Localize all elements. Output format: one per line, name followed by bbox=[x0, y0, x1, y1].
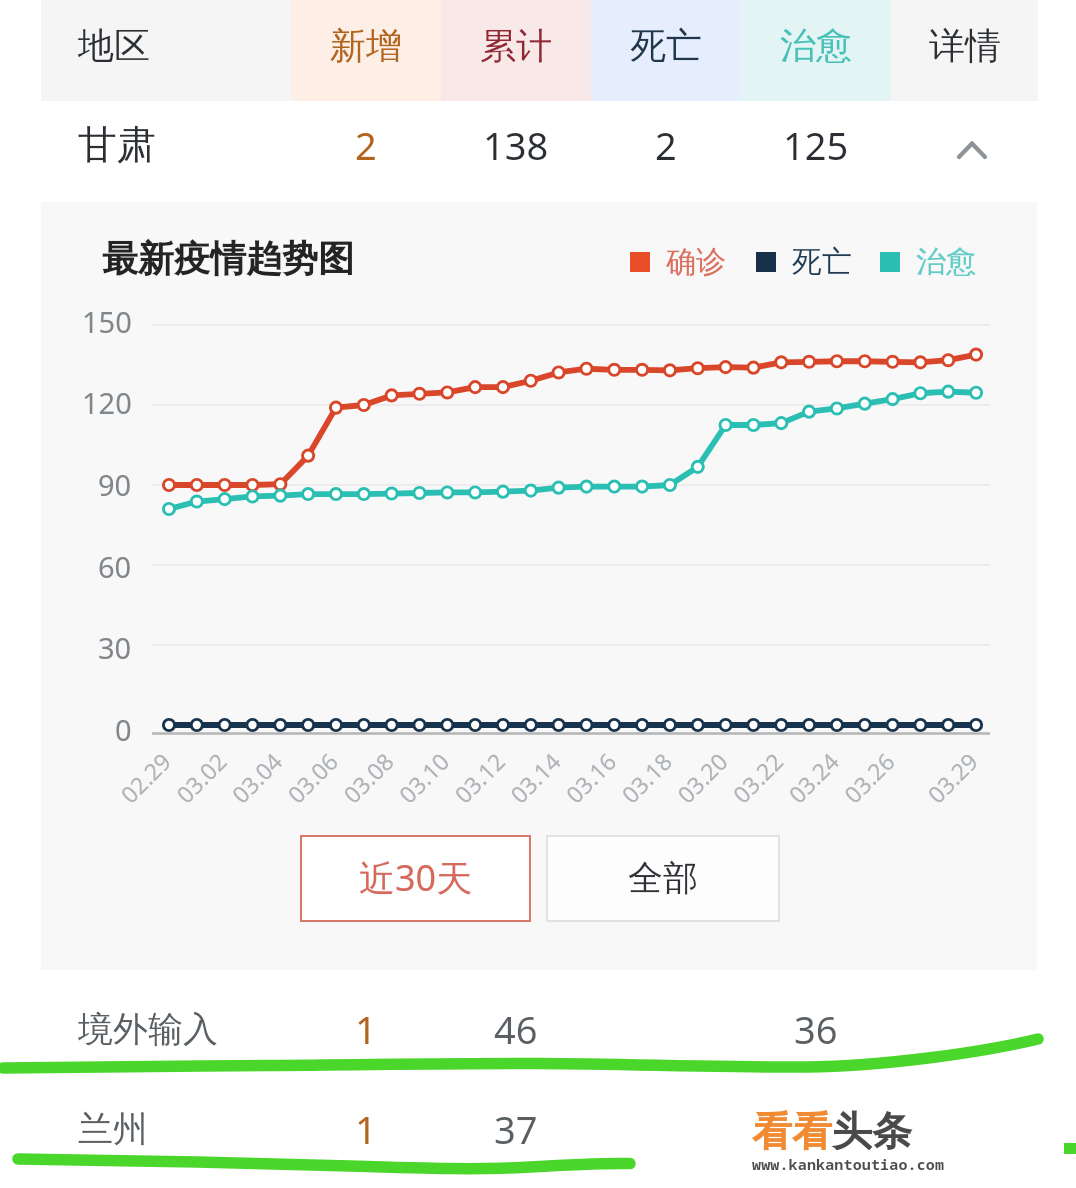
staticText: 治愈 bbox=[780, 23, 852, 68]
staticText: 46 bbox=[494, 1003, 538, 1055]
button[interactable]: 兰州 bbox=[0, 1089, 1076, 1169]
staticText: 1 bbox=[355, 1003, 377, 1055]
staticText: 头条 bbox=[832, 1106, 912, 1156]
staticText: 138 bbox=[483, 119, 549, 171]
button[interactable]: 死亡 bbox=[591, 0, 741, 101]
button[interactable]: 甘肃 bbox=[0, 101, 1076, 202]
staticText: 详情 bbox=[929, 23, 1001, 68]
staticText: 甘肃 bbox=[78, 120, 156, 169]
staticText: 2 bbox=[355, 119, 377, 171]
staticText: 125 bbox=[783, 119, 849, 171]
staticText: 2 bbox=[655, 119, 677, 171]
button[interactable]: 新增 bbox=[291, 0, 441, 101]
button[interactable]: 近30天 bbox=[300, 835, 531, 922]
button[interactable]: 境外输入 bbox=[0, 989, 1076, 1069]
button[interactable]: 治愈 bbox=[741, 0, 891, 101]
button[interactable]: 累计 bbox=[441, 0, 591, 101]
staticText: 1 bbox=[355, 1103, 377, 1155]
staticText: 死亡 bbox=[792, 243, 852, 281]
button[interactable]: 详情 bbox=[891, 0, 1038, 101]
staticText: 看看 bbox=[752, 1106, 832, 1156]
staticText: 全部 bbox=[628, 856, 698, 900]
staticText: 境外输入 bbox=[78, 1007, 218, 1051]
staticText: 治愈 bbox=[916, 243, 976, 281]
staticText: 37 bbox=[494, 1103, 538, 1155]
staticText: 36 bbox=[794, 1003, 838, 1055]
staticText: 兰州 bbox=[78, 1107, 148, 1151]
staticText: 死亡 bbox=[630, 23, 702, 68]
staticText: 确诊 bbox=[666, 243, 726, 281]
staticText: www.kankantoutiao.com bbox=[752, 1154, 945, 1174]
staticText: 累计 bbox=[480, 23, 552, 68]
staticText: 地区 bbox=[78, 23, 150, 68]
button[interactable]: 全部 bbox=[546, 835, 780, 922]
staticText: 新增 bbox=[330, 23, 402, 68]
staticText: 最新疫情趋势图 bbox=[102, 236, 354, 281]
staticText: 近30天 bbox=[359, 853, 473, 902]
button[interactable]: Collapse details bbox=[891, 94, 1038, 195]
